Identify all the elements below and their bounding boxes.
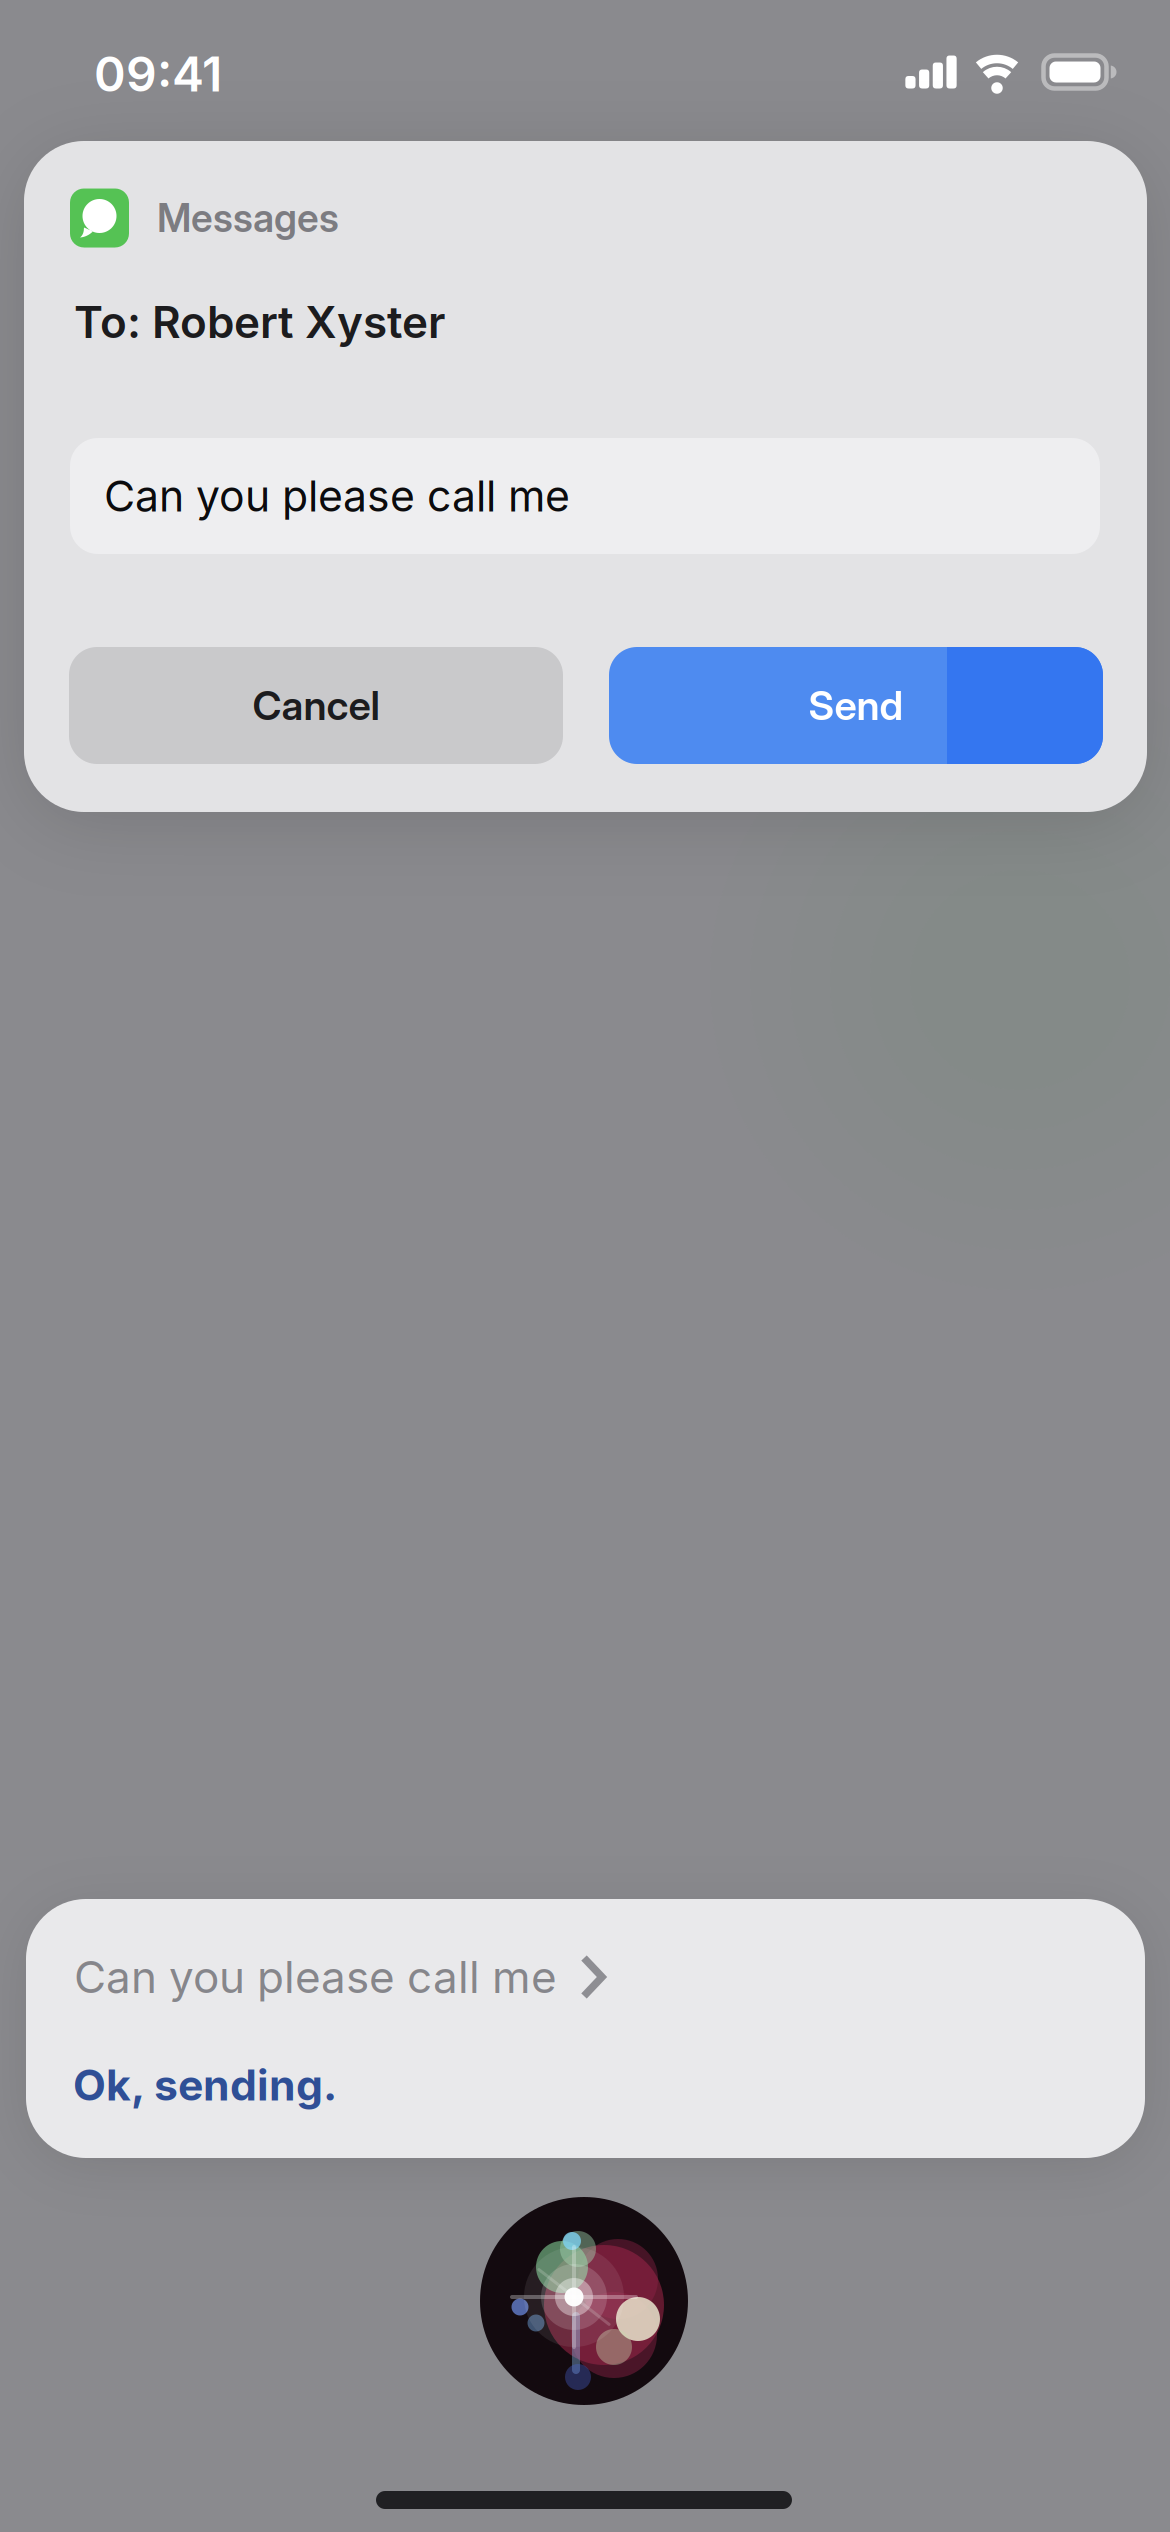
- button[interactable]: Cancel: [69, 647, 563, 764]
- staticText: Ok, sending.: [73, 2060, 337, 2110]
- button[interactable]: Send: [609, 647, 1103, 764]
- staticText: Cancel: [252, 682, 379, 729]
- button[interactable]: Siri: [479, 2196, 689, 2406]
- button[interactable]: Can you please call me: [74, 1942, 1094, 2012]
- staticText: Can you please call me: [74, 1951, 557, 2003]
- staticText: 09:41: [94, 46, 222, 102]
- staticText: Send: [808, 682, 903, 729]
- staticText: To: Robert Xyster: [74, 296, 445, 348]
- button[interactable]: Can you please call me: [70, 438, 1100, 554]
- staticText: Messages: [157, 195, 339, 241]
- staticText: Can you please call me: [104, 471, 570, 521]
